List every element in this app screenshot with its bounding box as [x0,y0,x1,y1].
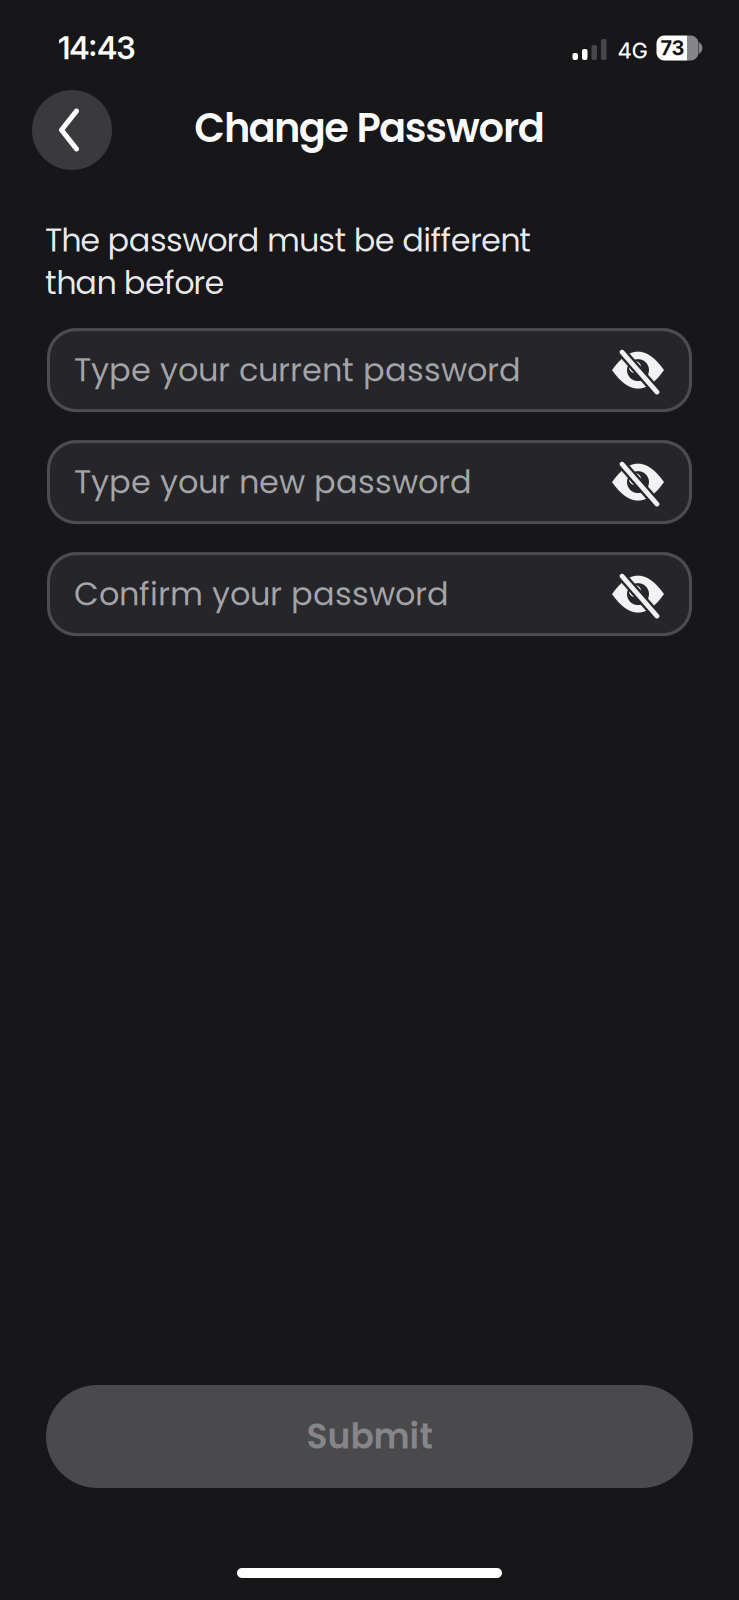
button[interactable]: Type your current password [47,328,692,412]
button[interactable]: Submit [46,1385,693,1488]
staticText: Type your new password [74,460,472,504]
button[interactable]: Confirm your password [47,552,692,636]
button[interactable]: Type your new password [47,440,692,524]
staticText: 4G [617,37,647,64]
staticText: Confirm your password [74,572,449,616]
staticText: The password must be different than befo… [45,219,531,304]
button[interactable]: Show password [611,347,665,393]
button[interactable]: Show password [611,459,665,505]
staticText: Change Password [194,100,545,156]
staticText: 73 [660,36,684,60]
button[interactable]: Back [32,90,112,170]
button[interactable]: Show password [611,571,665,617]
staticText: 14:43 [58,29,135,67]
staticText: Submit [306,1412,432,1461]
staticText: Type your current password [74,348,521,392]
